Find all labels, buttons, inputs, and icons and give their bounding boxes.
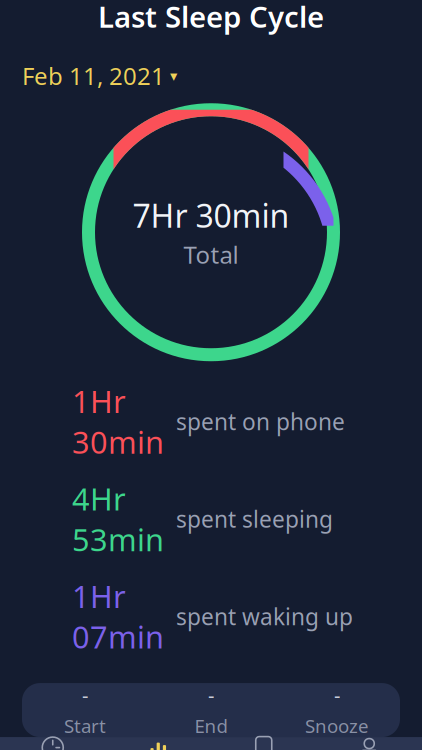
staticText: spent sleeping: [176, 504, 333, 534]
staticText: 7Hr 30min: [132, 194, 289, 237]
staticText: Last Sleep Cycle: [98, 0, 324, 36]
staticText: 1Hr 30min: [72, 381, 164, 462]
button[interactable]: Profile: [316, 730, 422, 750]
staticText: -: [208, 682, 214, 708]
staticText: Start: [64, 713, 106, 738]
staticText: End: [194, 713, 227, 738]
button[interactable]: Alarm: [0, 730, 105, 750]
button[interactable]: Device: [211, 730, 316, 750]
staticText: 4Hr 53min: [72, 478, 164, 560]
staticText: ▾: [170, 67, 177, 84]
button[interactable]: Stats: [105, 730, 211, 750]
staticText: Snooze: [305, 713, 369, 738]
staticText: Feb 11, 2021: [22, 60, 165, 92]
button[interactable]: Feb 11, 2021: [22, 56, 177, 96]
staticText: spent on phone: [176, 406, 345, 436]
staticText: Total: [183, 239, 238, 270]
staticText: -: [334, 682, 340, 708]
staticText: spent waking up: [176, 601, 353, 631]
staticText: -: [82, 682, 88, 708]
staticText: 1Hr 07min: [72, 576, 164, 657]
